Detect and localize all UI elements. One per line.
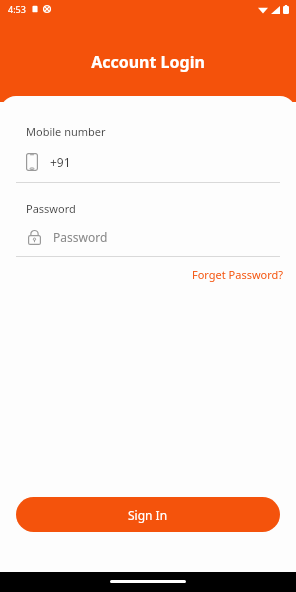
staticText: 4:53 <box>8 3 26 15</box>
staticText: Sign In <box>128 507 168 523</box>
staticText: Password <box>53 229 108 245</box>
button[interactable]: Sign In <box>16 497 280 532</box>
staticText: Mobile number <box>26 124 106 139</box>
button[interactable]: Forget Password? <box>180 263 296 286</box>
button[interactable]: Mobile number <box>0 149 296 175</box>
other: Mobile number <box>26 153 38 171</box>
button[interactable]: Password <box>0 224 296 250</box>
staticText: Account Login <box>91 51 205 73</box>
staticText: Forget Password? <box>192 267 284 282</box>
staticText: Password <box>26 201 76 216</box>
staticText: +91 <box>50 154 71 170</box>
other: Password <box>28 229 41 245</box>
